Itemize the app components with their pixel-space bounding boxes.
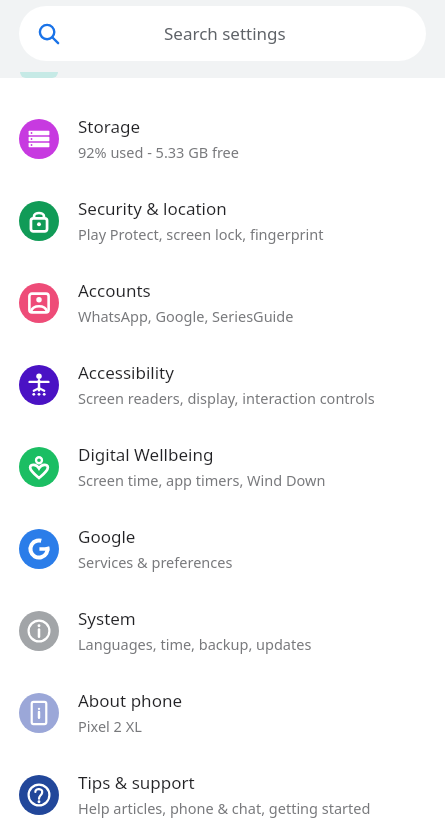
staticText: Security & location xyxy=(78,197,227,220)
button[interactable]: Accessibility xyxy=(0,344,445,426)
button[interactable]: Search xyxy=(19,6,426,61)
staticText: Google xyxy=(78,525,136,548)
staticText: Pixel 2 XL xyxy=(78,716,142,736)
staticText: Screen readers, display, interaction con… xyxy=(78,388,375,408)
staticText: Tips & support xyxy=(78,771,195,794)
button[interactable]: About phone xyxy=(0,672,445,754)
staticText: Accounts xyxy=(78,279,151,302)
staticText: Storage xyxy=(78,115,141,138)
staticText: Digital Wellbeing xyxy=(78,443,214,466)
staticText: 92% used - 5.33 GB free xyxy=(78,142,239,162)
other: Search xyxy=(19,6,79,61)
staticText: Play Protect, screen lock, fingerprint xyxy=(78,224,324,244)
staticText: Accessibility xyxy=(78,361,174,384)
staticText: Search settings xyxy=(164,22,286,45)
button[interactable]: Tips & support xyxy=(0,754,445,835)
button[interactable]: Accounts xyxy=(0,262,445,344)
staticText: Languages, time, backup, updates xyxy=(78,634,312,654)
staticText: System xyxy=(78,607,136,630)
staticText: About phone xyxy=(78,689,183,712)
button[interactable]: System xyxy=(0,590,445,672)
button[interactable]: Google xyxy=(0,508,445,590)
staticText: Screen time, app timers, Wind Down xyxy=(78,470,326,490)
button[interactable]: Security & location xyxy=(0,180,445,262)
staticText: Help articles, phone & chat, getting sta… xyxy=(78,798,371,818)
staticText: WhatsApp, Google, SeriesGuide xyxy=(78,306,294,326)
staticText: Services & preferences xyxy=(78,552,233,572)
button[interactable]: Digital Wellbeing xyxy=(0,426,445,508)
button[interactable]: Storage xyxy=(0,98,445,180)
